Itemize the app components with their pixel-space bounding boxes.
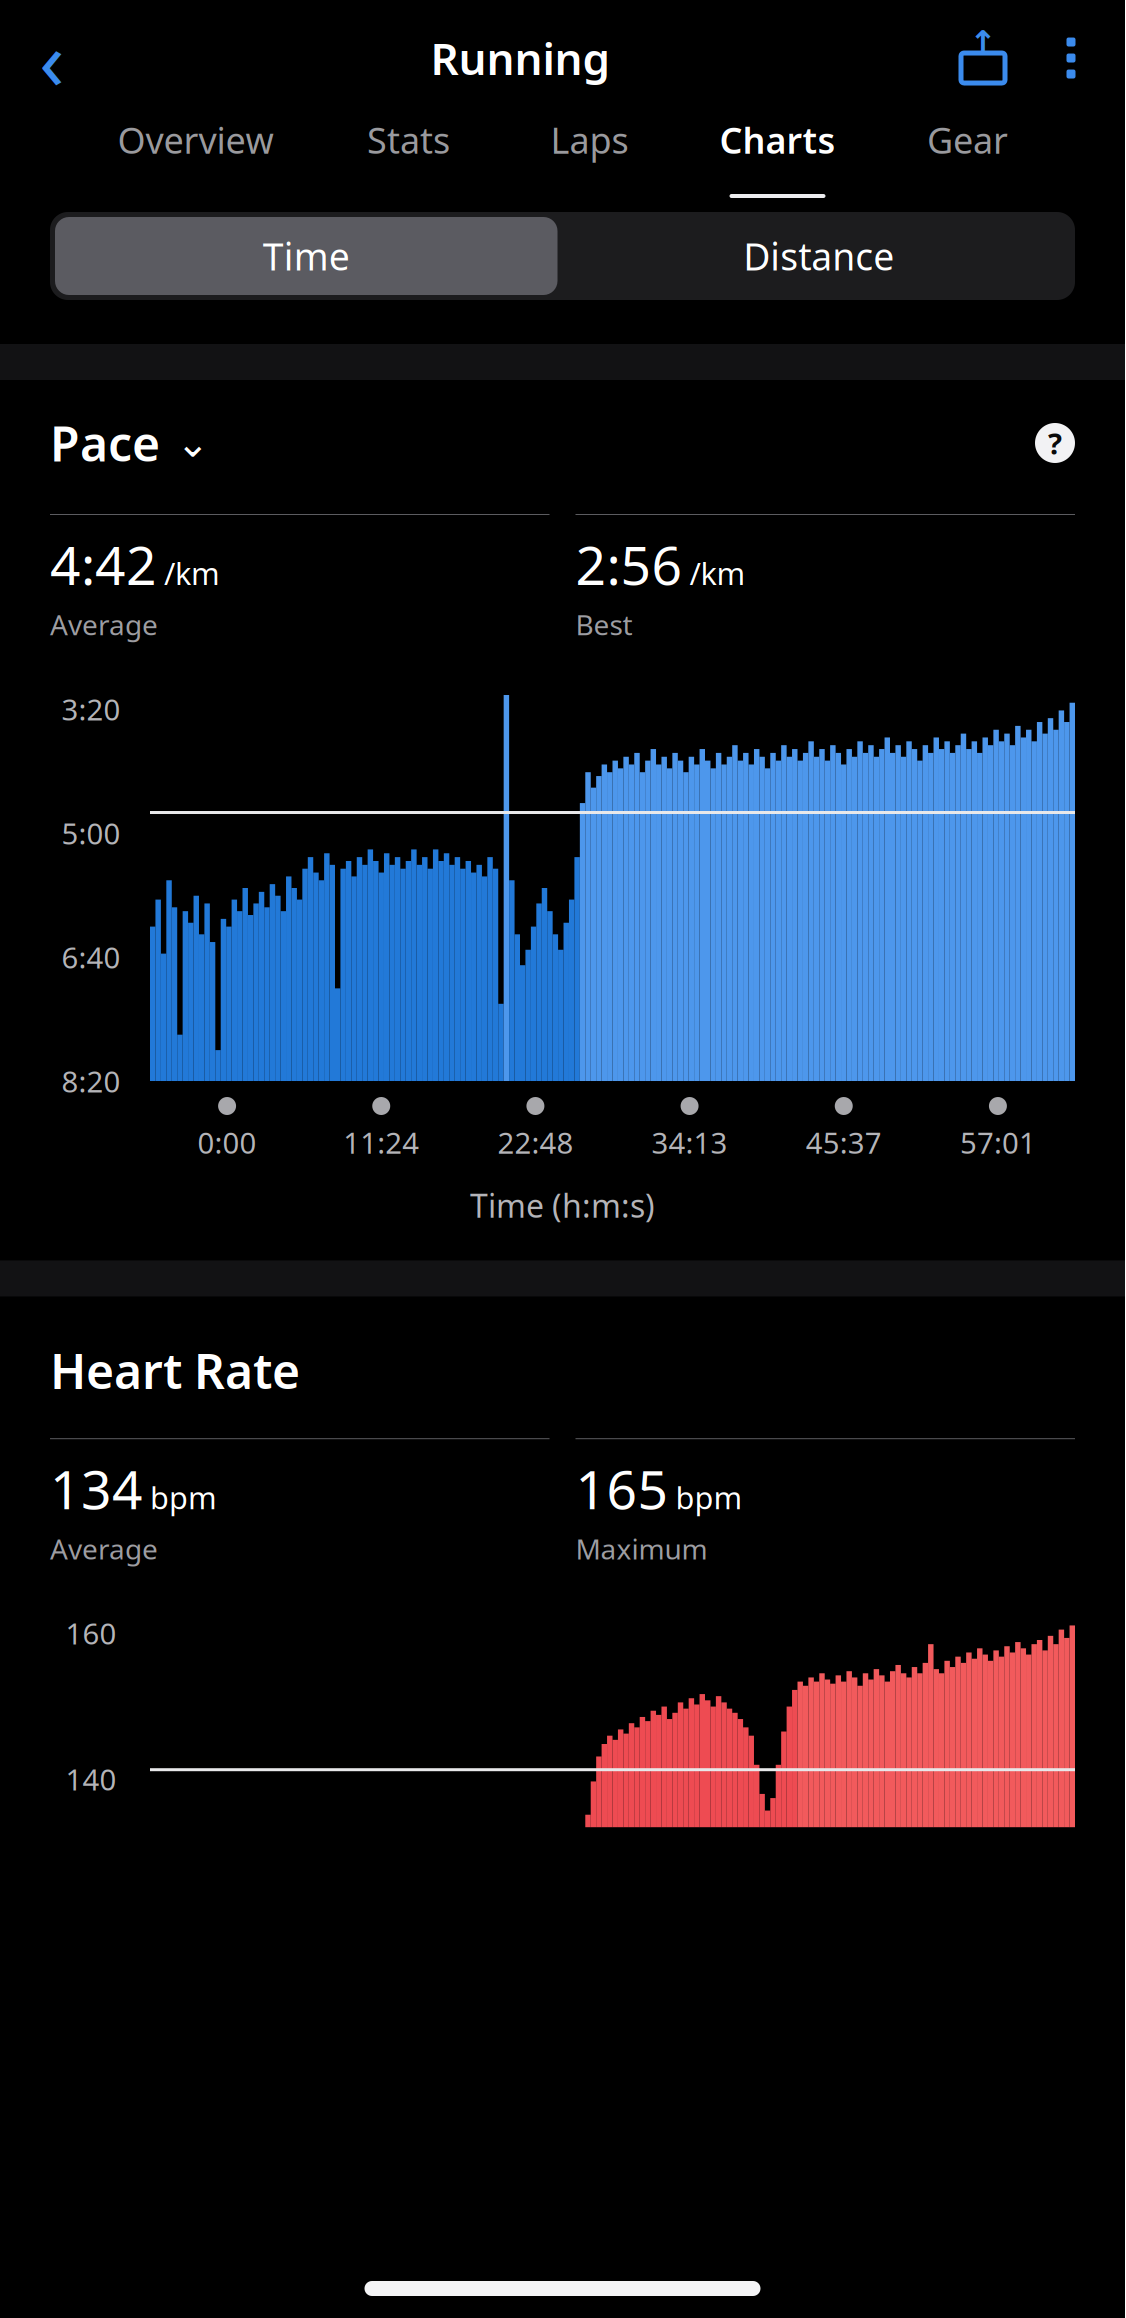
staticText: 4:42	[50, 529, 157, 600]
staticText: 5:00	[61, 813, 120, 852]
button[interactable]: Back	[4, 16, 100, 100]
staticText: 45:37	[806, 1123, 882, 1162]
button[interactable]: Gear	[919, 116, 1015, 198]
staticText: 34:13	[652, 1123, 728, 1162]
staticText: Distance	[743, 231, 894, 281]
staticText: ?	[1048, 423, 1062, 462]
staticText: Time (h:m:s)	[470, 1184, 655, 1226]
staticText: bpm	[150, 1477, 217, 1518]
staticText: 8:20	[61, 1061, 120, 1100]
button[interactable]: Overview	[117, 116, 273, 198]
button[interactable]: Charts	[719, 116, 835, 198]
staticText: Maximum	[575, 1530, 707, 1567]
staticText: 134	[50, 1453, 143, 1524]
staticText: Heart Rate	[50, 1338, 300, 1402]
staticText: Average	[50, 606, 158, 643]
button[interactable]: Time	[50, 212, 562, 300]
button[interactable]: Laps	[541, 116, 637, 198]
staticText: Time	[263, 231, 350, 281]
staticText: 160	[65, 1614, 116, 1653]
staticText: 165	[575, 1453, 668, 1524]
staticText: 0:00	[198, 1123, 257, 1162]
button[interactable]: Pace	[50, 408, 210, 478]
staticText: /km	[164, 553, 220, 593]
button[interactable]: Share	[941, 16, 1025, 100]
staticText: /km	[689, 553, 745, 593]
staticText: Running	[430, 29, 610, 87]
staticText: Overview	[117, 116, 273, 164]
staticText: ⌄	[176, 420, 210, 466]
staticText: Average	[50, 1530, 158, 1567]
staticText: ↑	[969, 24, 997, 62]
staticText: 6:40	[61, 937, 120, 976]
staticText: ‹	[39, 3, 65, 113]
staticText: 140	[65, 1760, 116, 1799]
staticText: Laps	[550, 116, 628, 164]
staticText: Pace	[50, 411, 160, 475]
staticText: 3:20	[61, 689, 120, 728]
staticText: bpm	[675, 1477, 742, 1518]
staticText: 11:24	[343, 1123, 419, 1162]
staticText: Charts	[719, 116, 835, 164]
button[interactable]: More options	[1025, 16, 1117, 100]
staticText: 2:56	[575, 529, 682, 600]
staticText: 22:48	[497, 1123, 573, 1162]
button[interactable]: Stats	[360, 116, 456, 198]
button[interactable]: Help about pace	[1035, 423, 1075, 463]
staticText: 57:01	[960, 1123, 1036, 1162]
staticText: Gear	[927, 116, 1008, 164]
staticText: Stats	[367, 116, 450, 164]
button[interactable]: Distance	[562, 212, 1075, 300]
staticText: Best	[575, 606, 632, 643]
